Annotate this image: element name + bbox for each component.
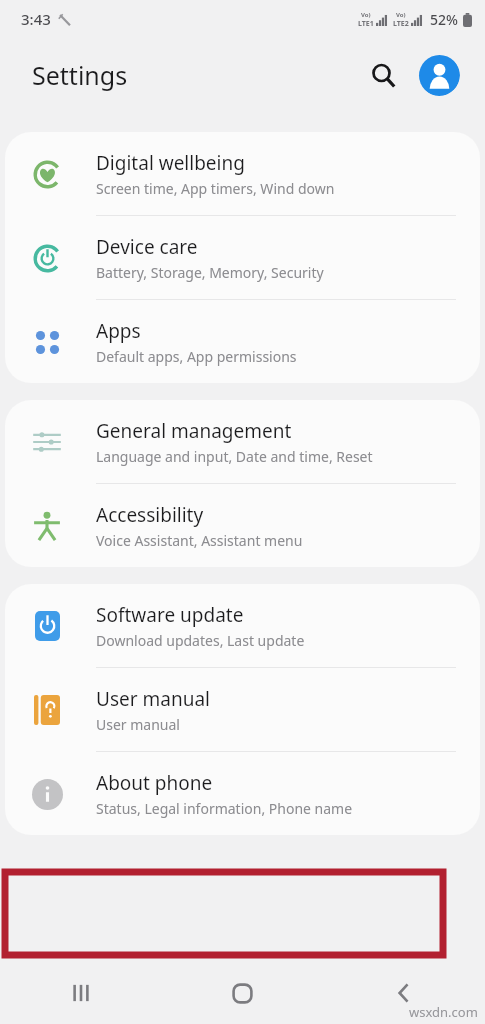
staticText: Default apps, App permissions xyxy=(96,347,297,366)
staticText: User manual xyxy=(96,715,180,734)
staticText: Vo) xyxy=(396,11,406,19)
staticText: Screen time, App timers, Wind down xyxy=(96,179,335,198)
staticText: General management xyxy=(96,418,292,444)
button[interactable]: Search xyxy=(361,53,405,97)
staticText: LTE1 xyxy=(358,19,374,29)
staticText: Vo) xyxy=(361,11,371,19)
button[interactable]: General management xyxy=(5,400,480,483)
button[interactable]: Back xyxy=(323,962,485,1024)
button[interactable]: Apps xyxy=(5,300,480,383)
staticText: Language and input, Date and time, Reset xyxy=(96,447,373,466)
staticText: Software update xyxy=(96,602,244,628)
staticText: LTE2 xyxy=(393,19,409,29)
button[interactable]: About phone xyxy=(5,752,480,835)
staticText: Battery, Storage, Memory, Security xyxy=(96,263,324,282)
button[interactable]: User manual xyxy=(5,668,480,751)
button[interactable]: Recents xyxy=(0,962,161,1024)
staticText: Settings xyxy=(32,58,128,92)
button[interactable]: Digital wellbeing xyxy=(5,132,480,215)
staticText: User manual xyxy=(96,686,210,712)
staticText: 52% xyxy=(430,10,458,29)
button[interactable]: Device care xyxy=(5,216,480,299)
button[interactable]: Software update xyxy=(5,584,480,667)
button[interactable]: Account xyxy=(418,54,460,96)
staticText: Digital wellbeing xyxy=(96,150,245,176)
staticText: Device care xyxy=(96,234,198,260)
staticText: 3:43 xyxy=(21,9,51,29)
staticText: Accessibility xyxy=(96,502,204,528)
staticText: Apps xyxy=(96,318,141,344)
button[interactable]: Accessibility xyxy=(5,484,480,567)
staticText: Status, Legal information, Phone name xyxy=(96,799,353,818)
staticText: Download updates, Last update xyxy=(96,631,305,650)
button[interactable]: Home xyxy=(161,962,323,1024)
staticText: About phone xyxy=(96,770,213,796)
staticText: wsxdn.com xyxy=(409,1003,478,1021)
staticText: Voice Assistant, Assistant menu xyxy=(96,531,303,550)
